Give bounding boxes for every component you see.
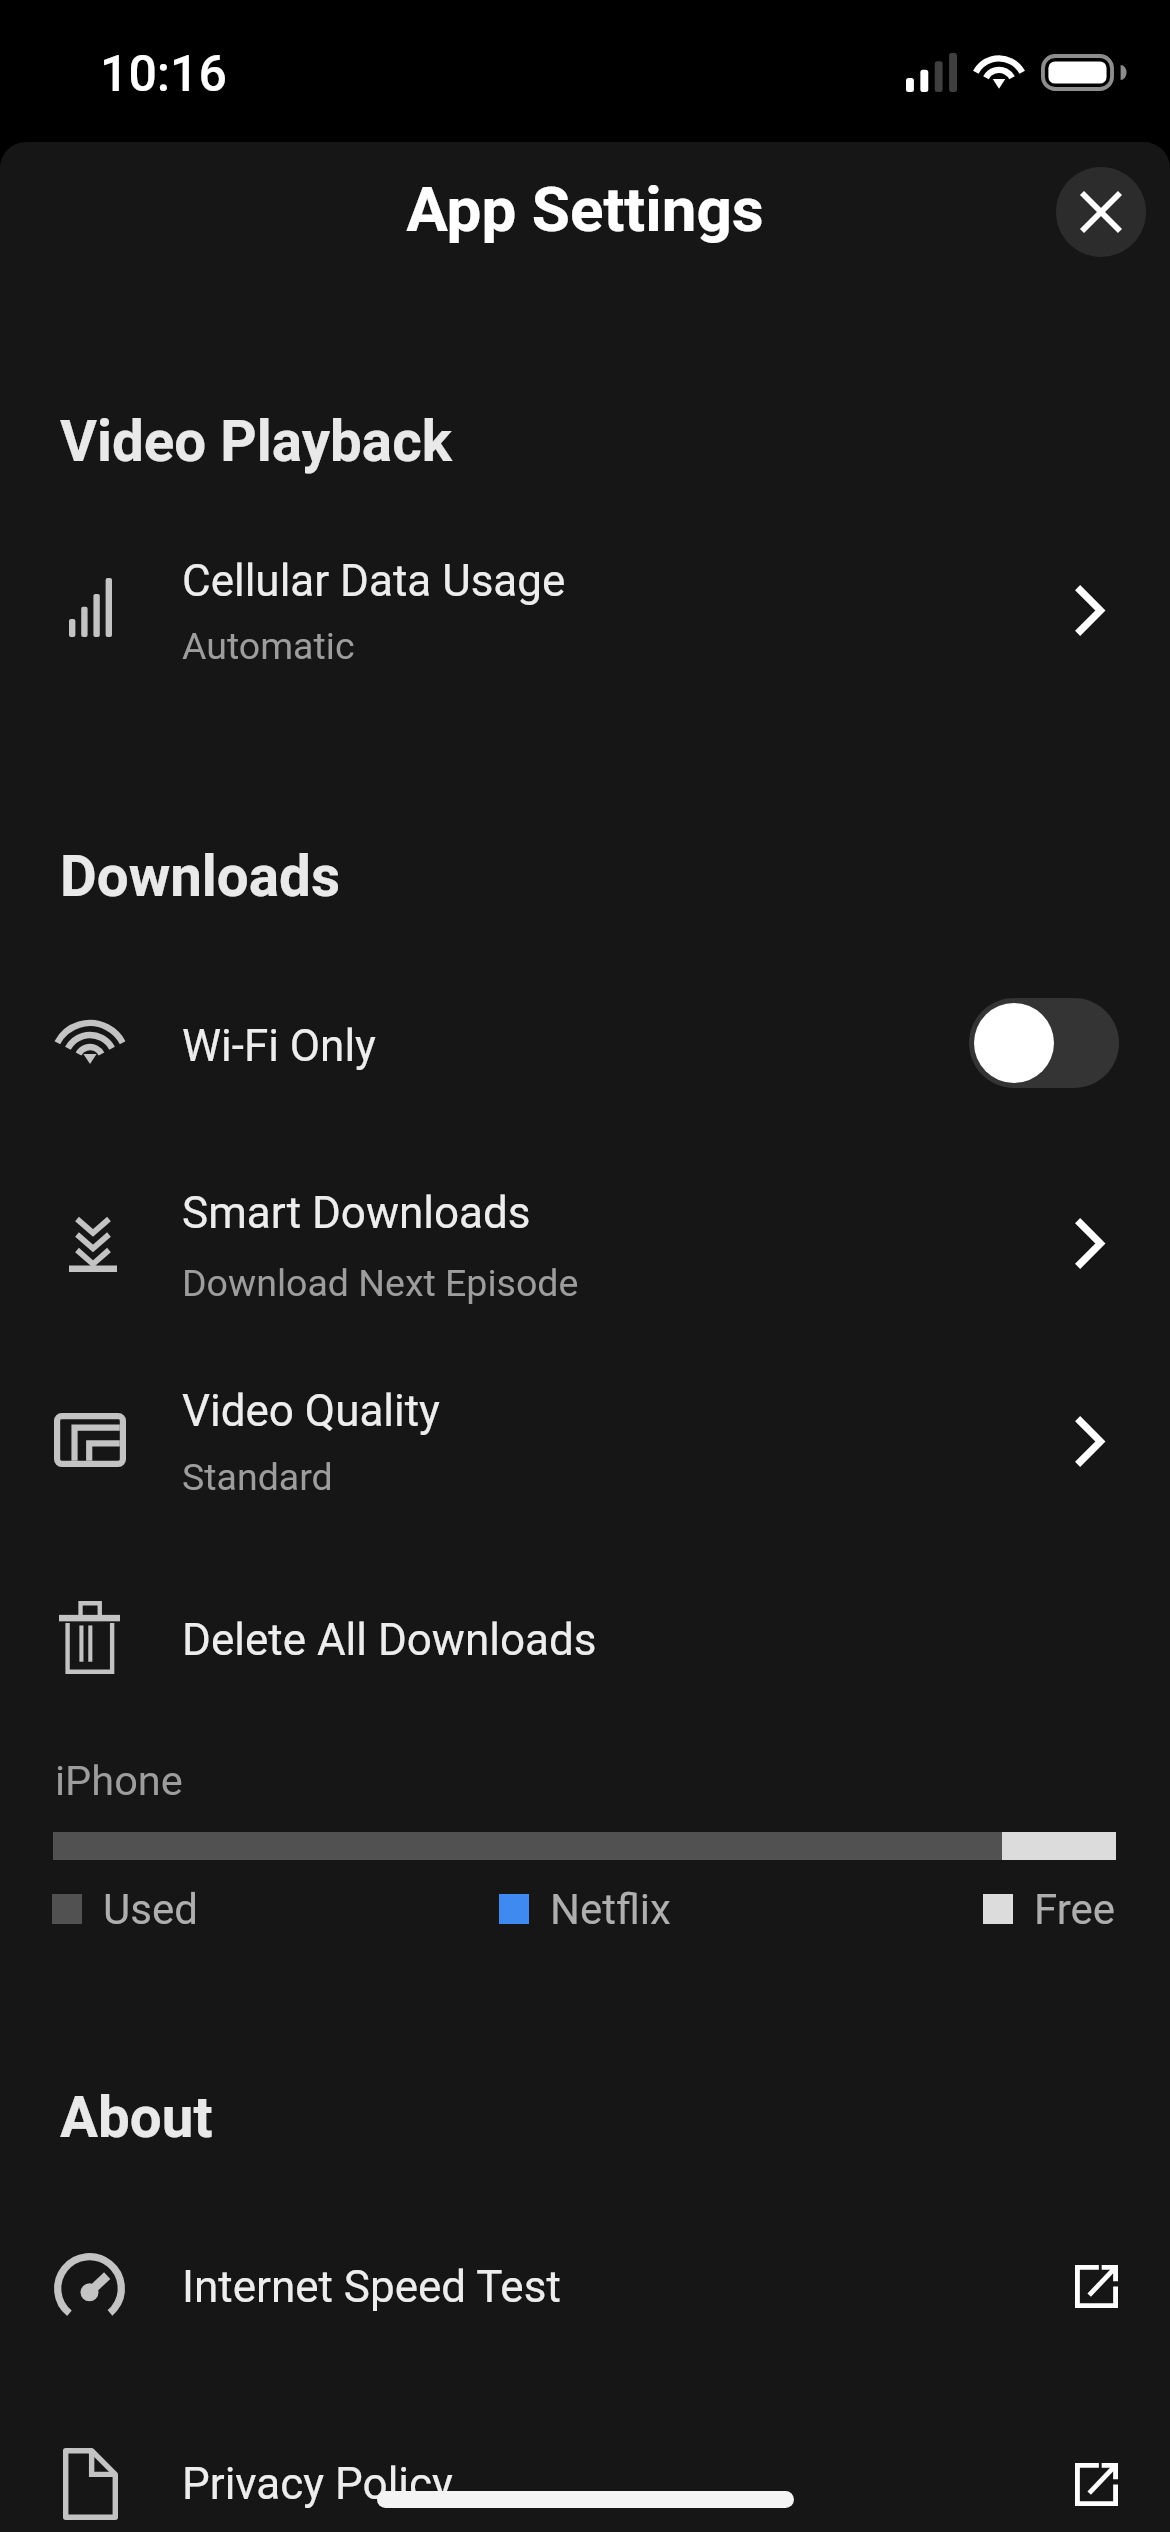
button[interactable]: Open Privacy Policy <box>1056 2444 1136 2524</box>
staticText: Wi-Fi Only <box>182 1020 376 1072</box>
staticText: Privacy Policy <box>182 2458 453 2510</box>
button[interactable]: Smart Downloads <box>1039 1193 1139 1293</box>
staticText: Free <box>1034 1885 1116 1934</box>
staticText: Delete All Downloads <box>182 1614 597 1666</box>
button[interactable]: Cellular Data Usage <box>0 535 1170 679</box>
staticText: Video Playback <box>60 409 452 475</box>
button[interactable]: Close <box>1056 167 1146 257</box>
staticText: Downloads <box>60 844 341 910</box>
staticText: App Settings <box>0 173 1170 246</box>
staticText: Used <box>103 1885 198 1934</box>
button[interactable]: Privacy Policy <box>0 2412 1170 2532</box>
staticText: Automatic <box>182 624 355 668</box>
button[interactable]: Video Quality <box>1039 1391 1139 1491</box>
button[interactable]: Cellular Data Usage <box>1039 560 1139 660</box>
button[interactable]: Internet Speed Test <box>0 2216 1170 2360</box>
staticText: Download Next Episode <box>182 1261 579 1305</box>
staticText: iPhone <box>55 1756 183 1805</box>
staticText: 10:16 <box>100 45 227 104</box>
button[interactable]: Smart Downloads <box>0 1171 1170 1315</box>
staticText: Smart Downloads <box>182 1187 531 1239</box>
staticText: Standard <box>182 1455 333 1499</box>
button[interactable]: Delete All Downloads <box>0 1566 1170 1710</box>
staticText: Internet Speed Test <box>182 2261 561 2313</box>
staticText: Video Quality <box>182 1385 440 1437</box>
button[interactable]: Open Internet Speed Test <box>1056 2246 1136 2326</box>
button[interactable]: Wi-Fi Only <box>0 969 1170 1113</box>
staticText: Netflix <box>550 1885 671 1934</box>
staticText: About <box>60 2085 213 2151</box>
staticText: Cellular Data Usage <box>182 555 566 607</box>
button[interactable]: Video Quality <box>0 1368 1170 1512</box>
button[interactable]: Wi-Fi Only toggle, off <box>969 998 1119 1088</box>
